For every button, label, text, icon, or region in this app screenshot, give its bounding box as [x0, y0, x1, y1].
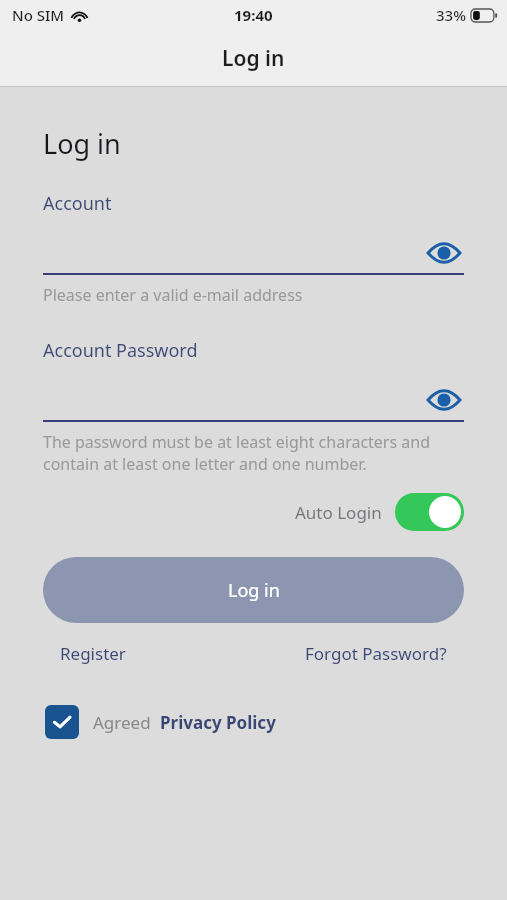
- staticText: Account: [43, 191, 112, 216]
- staticText: Log in: [43, 125, 121, 162]
- staticText: Register: [60, 642, 126, 665]
- button[interactable]: Auto Login toggle: [395, 493, 464, 531]
- staticText: Account Password: [43, 338, 198, 363]
- button[interactable]: Privacy Policy: [160, 711, 276, 734]
- staticText: Auto Login: [295, 501, 382, 524]
- button[interactable]: Log in: [43, 557, 464, 623]
- staticText: No SIM: [12, 5, 65, 25]
- button[interactable]: Toggle visibility: [424, 386, 464, 414]
- staticText: 19:40: [234, 5, 273, 25]
- staticText: The password must be at least eight char…: [43, 431, 464, 475]
- button[interactable]: Register: [60, 642, 126, 665]
- staticText: Log in: [222, 44, 285, 73]
- staticText: Please enter a valid e-mail address: [43, 284, 303, 306]
- staticText: Forgot Password?: [305, 642, 447, 665]
- staticText: Log in: [228, 578, 280, 603]
- button[interactable]: Agreed to privacy policy: [45, 705, 79, 739]
- staticText: 33%: [436, 5, 466, 25]
- button[interactable]: Toggle visibility: [424, 239, 464, 267]
- staticText: Agreed: [93, 711, 151, 734]
- button[interactable]: Forgot Password?: [305, 642, 447, 665]
- staticText: Privacy Policy: [160, 711, 276, 734]
